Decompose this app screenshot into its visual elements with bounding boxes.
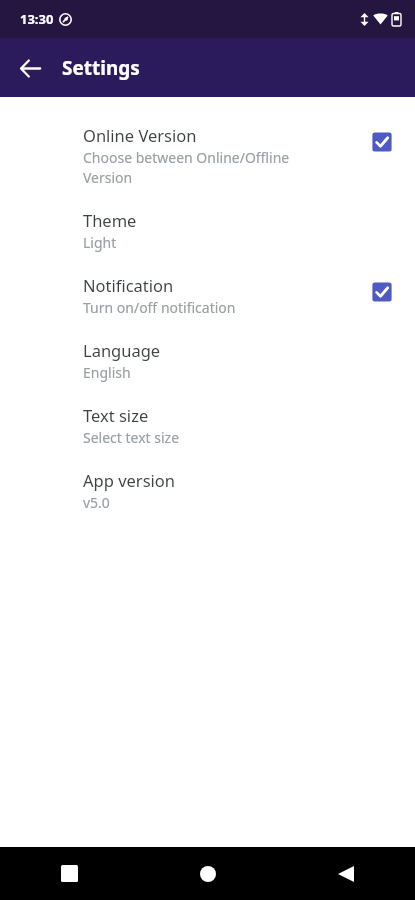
staticText: English: [83, 363, 306, 382]
button[interactable]: Online Version: [0, 113, 415, 198]
button[interactable]: Back: [8, 46, 52, 90]
button[interactable]: Toggle Notification: [369, 279, 395, 305]
staticText: Theme: [83, 209, 137, 231]
staticText: Select text size: [83, 428, 306, 447]
button[interactable]: Back: [277, 847, 415, 900]
button[interactable]: Language: [0, 328, 415, 393]
staticText: Notification: [83, 274, 174, 296]
button[interactable]: App version: [0, 458, 415, 523]
button[interactable]: Text size: [0, 393, 415, 458]
staticText: Turn on/off notification: [83, 298, 306, 317]
staticText: Light: [83, 233, 306, 252]
button[interactable]: Recent apps: [0, 847, 139, 900]
staticText: Online Version: [83, 124, 197, 146]
button[interactable]: Home: [139, 847, 277, 900]
button[interactable]: Notification: [0, 263, 415, 328]
button[interactable]: Theme: [0, 198, 415, 263]
button[interactable]: Toggle Online Version: [369, 129, 395, 155]
staticText: Settings: [62, 55, 140, 81]
staticText: Text size: [83, 404, 149, 426]
staticText: Choose between Online/Offline Version: [83, 148, 306, 187]
staticText: v5.0: [83, 493, 306, 512]
staticText: Language: [83, 339, 161, 361]
staticText: 13:30: [20, 10, 54, 28]
staticText: App version: [83, 469, 175, 491]
